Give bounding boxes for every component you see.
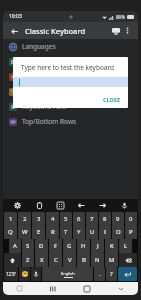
staticText: E: [37, 228, 41, 236]
staticText: T: [64, 228, 68, 236]
staticText: O: [116, 228, 121, 236]
button[interactable]: A: [9, 239, 21, 253]
button[interactable]: Back: [8, 25, 20, 37]
button[interactable]: Keyboard: [3, 282, 36, 295]
button[interactable]: 5: [60, 212, 72, 225]
button[interactable]: Cast: [109, 24, 122, 37]
button[interactable]: clip: [32, 199, 46, 212]
button[interactable]: mic: [117, 199, 131, 212]
button[interactable]: ?: [106, 267, 117, 281]
staticText: Classic Keyboard: [25, 26, 86, 36]
button[interactable]: M: [105, 253, 118, 267]
button[interactable]: Key Size: [3, 84, 138, 99]
button[interactable]: 4: [46, 212, 59, 225]
button[interactable]: grid: [53, 199, 67, 212]
staticText: I: [104, 228, 107, 236]
staticText: U: [90, 228, 95, 236]
staticText: 2: [23, 215, 27, 223]
staticText: K: [110, 242, 114, 250]
button[interactable]: E: [32, 225, 45, 239]
button[interactable]: J: [91, 239, 104, 253]
staticText: CLOSE: [103, 96, 120, 103]
button[interactable]: right: [95, 199, 109, 212]
button[interactable]: gear: [10, 199, 24, 212]
staticText: M: [109, 256, 115, 264]
staticText: C: [54, 256, 58, 264]
button[interactable]: Home: [70, 282, 104, 295]
staticText: 3: [37, 215, 41, 223]
staticText: Predictions & Corrections: [22, 57, 100, 66]
staticText: P: [129, 228, 133, 236]
button[interactable]: 6: [73, 212, 85, 225]
staticText: S: [26, 242, 30, 250]
button[interactable]: Emoji: [19, 267, 30, 281]
button[interactable]: CLOSE: [95, 94, 128, 105]
button[interactable]: Sound & Vibration: [3, 69, 138, 84]
button[interactable]: Top/Bottom Rows: [3, 114, 138, 129]
button[interactable]: L: [119, 239, 132, 253]
button[interactable]: left: [74, 199, 88, 212]
staticText: 0: [129, 215, 133, 223]
button[interactable]: Voice input: [31, 267, 41, 281]
button[interactable]: K: [105, 239, 118, 253]
button[interactable]: O: [112, 225, 124, 239]
button[interactable]: Backspace: [119, 253, 137, 267]
button[interactable]: R: [46, 225, 59, 239]
button[interactable]: 2: [18, 212, 31, 225]
button[interactable]: 123?: [4, 267, 18, 281]
button[interactable]: D: [35, 239, 48, 253]
button[interactable]: Z: [22, 253, 34, 267]
staticText: D: [39, 242, 44, 250]
staticText: 1: [9, 215, 13, 223]
staticText: English: [61, 271, 75, 276]
staticText: Keyboard Font: [22, 102, 67, 111]
staticText: A: [13, 242, 17, 250]
staticText: Z: [26, 256, 30, 264]
button[interactable]: 7: [86, 212, 98, 225]
button[interactable]: B: [77, 253, 90, 267]
staticText: .: [99, 270, 101, 278]
button[interactable]: S: [22, 239, 34, 253]
staticText: Sound & Vibration: [22, 72, 78, 81]
button[interactable]: Keyboard Font: [3, 99, 138, 114]
button[interactable]: C: [49, 253, 62, 267]
button[interactable]: I: [99, 225, 111, 239]
staticText: ?: [110, 270, 113, 278]
button[interactable]: 0: [125, 212, 137, 225]
button[interactable]: Shift: [4, 253, 21, 267]
button[interactable]: Hide keyboard: [104, 282, 138, 295]
button[interactable]: X: [35, 253, 48, 267]
button[interactable]: V: [63, 253, 76, 267]
button[interactable]: T: [60, 225, 72, 239]
staticText: F: [54, 242, 58, 250]
button[interactable]: Predictions & Corrections: [3, 54, 138, 69]
button[interactable]: English: [42, 267, 93, 281]
button[interactable]: .: [94, 267, 105, 281]
button[interactable]: W: [18, 225, 31, 239]
button[interactable]: N: [91, 253, 104, 267]
staticText: Languages: [22, 42, 56, 51]
button[interactable]: 8: [99, 212, 111, 225]
button[interactable]: P: [125, 225, 137, 239]
staticText: Y: [77, 228, 81, 236]
button[interactable]: H: [77, 239, 90, 253]
button[interactable]: Y: [73, 225, 85, 239]
staticText: Top/Bottom Rows: [22, 117, 77, 126]
button[interactable]: Q: [4, 225, 17, 239]
button[interactable]: 3: [32, 212, 45, 225]
button[interactable]: Recents: [36, 282, 70, 295]
button[interactable]: Enter: [118, 267, 137, 281]
button[interactable]: [13, 77, 128, 87]
staticText: N: [95, 256, 100, 264]
staticText: 4: [51, 215, 55, 223]
button[interactable]: More options: [122, 25, 133, 36]
button[interactable]: G: [63, 239, 76, 253]
button[interactable]: F: [49, 239, 62, 253]
button[interactable]: 1: [4, 212, 17, 225]
button[interactable]: U: [86, 225, 98, 239]
staticText: V: [68, 256, 72, 264]
staticText: 8: [103, 215, 107, 223]
staticText: 10:03: [9, 13, 22, 20]
button[interactable]: 9: [112, 212, 124, 225]
button[interactable]: Languages: [3, 39, 138, 54]
